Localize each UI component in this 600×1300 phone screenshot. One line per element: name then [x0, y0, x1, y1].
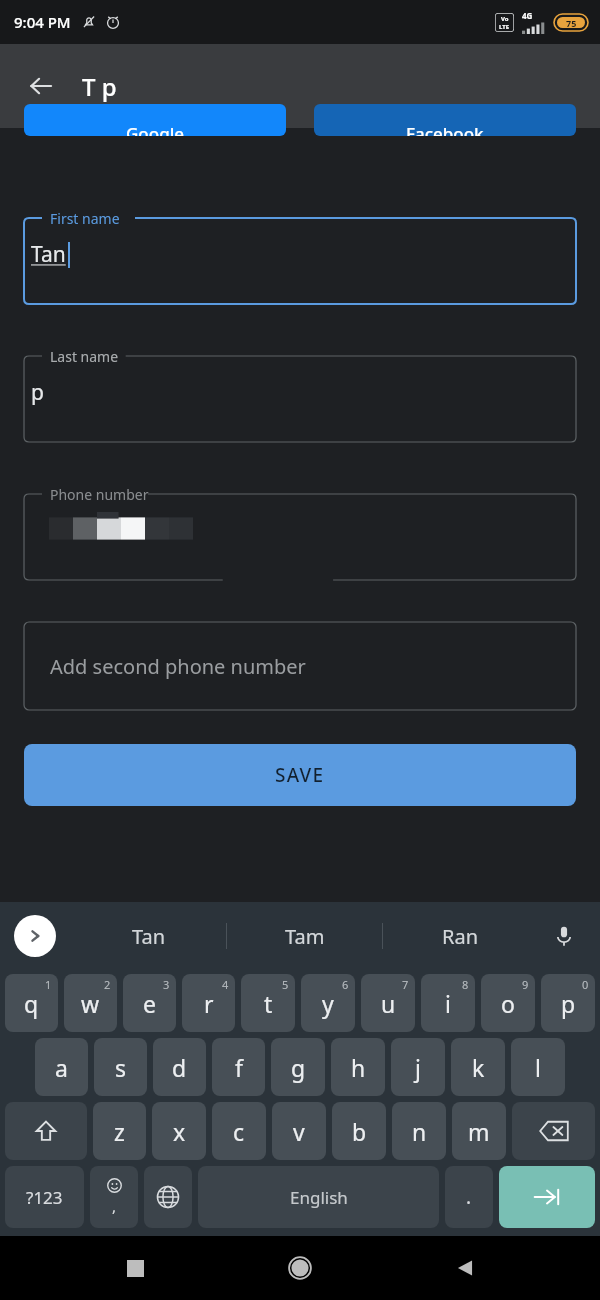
staticText: c	[233, 1116, 245, 1147]
button[interactable]: k	[451, 1038, 505, 1096]
staticText: n	[412, 1116, 427, 1147]
button[interactable]: x	[152, 1102, 206, 1160]
button[interactable]: Phone number	[24, 484, 576, 580]
button[interactable]: v	[272, 1102, 326, 1160]
staticText: Vo	[501, 15, 509, 23]
staticText: e	[143, 988, 156, 1019]
staticText: Last name	[50, 347, 119, 366]
staticText: 1	[45, 977, 52, 992]
button[interactable]: j	[391, 1038, 445, 1096]
staticText: 9:04 PM	[14, 12, 71, 32]
staticText: Tan	[31, 240, 66, 269]
staticText: 7	[402, 977, 409, 992]
button[interactable]: .	[445, 1166, 493, 1228]
button[interactable]: Tam	[227, 902, 382, 970]
button[interactable]: n	[392, 1102, 446, 1160]
button[interactable]: First name	[24, 208, 576, 304]
button[interactable]: q	[5, 974, 58, 1032]
button[interactable]: c	[212, 1102, 266, 1160]
button[interactable]: g	[271, 1038, 325, 1096]
staticText: 8	[462, 977, 469, 992]
staticText: ,	[112, 1196, 117, 1216]
button[interactable]: w	[64, 974, 117, 1032]
button[interactable]: y	[301, 974, 355, 1032]
button[interactable]: English	[198, 1166, 439, 1228]
button[interactable]: Emoji and comma	[90, 1166, 138, 1228]
staticText: Tan	[132, 923, 166, 950]
staticText: Add second phone number	[50, 653, 306, 680]
staticText: g	[291, 1052, 306, 1083]
button[interactable]: SAVE	[24, 744, 576, 806]
button[interactable]: More suggestions	[14, 915, 56, 957]
button[interactable]: Google	[24, 104, 286, 136]
button[interactable]: ?123	[5, 1166, 84, 1228]
staticText: u	[381, 988, 396, 1019]
staticText: q	[24, 988, 39, 1019]
staticText: v	[293, 1116, 305, 1147]
button[interactable]: o	[481, 974, 535, 1032]
staticText: m	[468, 1116, 490, 1147]
button[interactable]: h	[331, 1038, 385, 1096]
button[interactable]: b	[332, 1102, 386, 1160]
staticText: a	[55, 1052, 68, 1083]
staticText: o	[501, 988, 515, 1019]
staticText: 6	[342, 977, 349, 992]
button[interactable]: Home	[270, 1238, 330, 1298]
staticText: p	[561, 988, 576, 1019]
staticText: First name	[50, 209, 120, 228]
button[interactable]: Tan	[72, 902, 226, 970]
staticText: 0	[582, 977, 589, 992]
button[interactable]: p	[541, 974, 595, 1032]
staticText: r	[204, 988, 214, 1019]
staticText: 5	[282, 977, 289, 992]
staticText: f	[235, 1052, 243, 1083]
staticText: .	[466, 1184, 472, 1210]
staticText: i	[445, 988, 451, 1019]
button[interactable]: r	[182, 974, 235, 1032]
staticText: SAVE	[275, 762, 325, 788]
staticText: Facebook	[406, 122, 484, 136]
button[interactable]: d	[153, 1038, 206, 1096]
staticText: 4	[222, 977, 229, 992]
staticText: y	[322, 988, 334, 1019]
button[interactable]: m	[452, 1102, 506, 1160]
staticText: h	[351, 1052, 366, 1083]
button[interactable]: i	[421, 974, 475, 1032]
staticText: p	[31, 378, 44, 407]
button[interactable]: Next field	[499, 1166, 595, 1228]
button[interactable]: Ran	[383, 902, 538, 970]
button[interactable]: t	[241, 974, 295, 1032]
staticText: w	[81, 988, 100, 1019]
button[interactable]: Shift	[5, 1102, 87, 1160]
staticText: 2	[104, 977, 111, 992]
staticText: LTE	[499, 23, 510, 31]
button[interactable]: Recent apps	[105, 1238, 165, 1298]
button[interactable]: Last name	[24, 346, 576, 442]
staticText: 4G	[522, 10, 533, 21]
staticText: 75	[566, 17, 577, 29]
button[interactable]: Change language	[144, 1166, 192, 1228]
staticText: Phone number	[50, 485, 149, 504]
staticText: T p	[82, 70, 117, 103]
button[interactable]: l	[511, 1038, 565, 1096]
button[interactable]: u	[361, 974, 415, 1032]
staticText: j	[415, 1052, 421, 1083]
button[interactable]: Add second phone number	[24, 622, 576, 710]
button[interactable]: e	[123, 974, 176, 1032]
button[interactable]: z	[93, 1102, 146, 1160]
staticText: Ran	[442, 923, 479, 950]
button[interactable]: Back	[18, 63, 64, 109]
staticText: 9	[522, 977, 529, 992]
button[interactable]: a	[35, 1038, 88, 1096]
button[interactable]: Back	[435, 1238, 495, 1298]
staticText: t	[264, 988, 273, 1019]
button[interactable]: f	[212, 1038, 265, 1096]
staticText: z	[114, 1116, 125, 1147]
button[interactable]: Backspace	[512, 1102, 595, 1160]
button[interactable]: Voice input	[544, 916, 584, 956]
staticText: Tam	[285, 923, 325, 950]
staticText: English	[290, 1186, 348, 1209]
staticText: k	[472, 1052, 485, 1083]
button[interactable]: Facebook	[314, 104, 576, 136]
button[interactable]: s	[94, 1038, 147, 1096]
